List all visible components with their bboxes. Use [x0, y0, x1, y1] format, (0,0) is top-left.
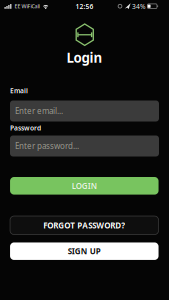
staticText: SIGN UP: [68, 246, 101, 256]
button[interactable]: LOGIN: [10, 177, 158, 195]
textField[interactable]: Enter email...: [15, 106, 159, 116]
staticText: 12:56: [75, 2, 93, 11]
staticText: LOGIN: [72, 180, 97, 191]
secureTextField[interactable]: Enter password...: [15, 141, 159, 151]
staticText: Enter password...: [15, 141, 79, 151]
button[interactable]: FORGOT PASSWORD?: [10, 216, 158, 235]
staticText: Login: [66, 49, 102, 66]
staticText: Password: [10, 123, 41, 132]
staticText: Enter email...: [15, 106, 63, 116]
button[interactable]: SIGN UP: [10, 242, 158, 260]
staticText: 34%: [132, 2, 146, 11]
staticText: Email: [10, 86, 28, 95]
staticText: FORGOT PASSWORD?: [43, 220, 125, 231]
staticText: EE WiFiCall: [14, 3, 39, 10]
